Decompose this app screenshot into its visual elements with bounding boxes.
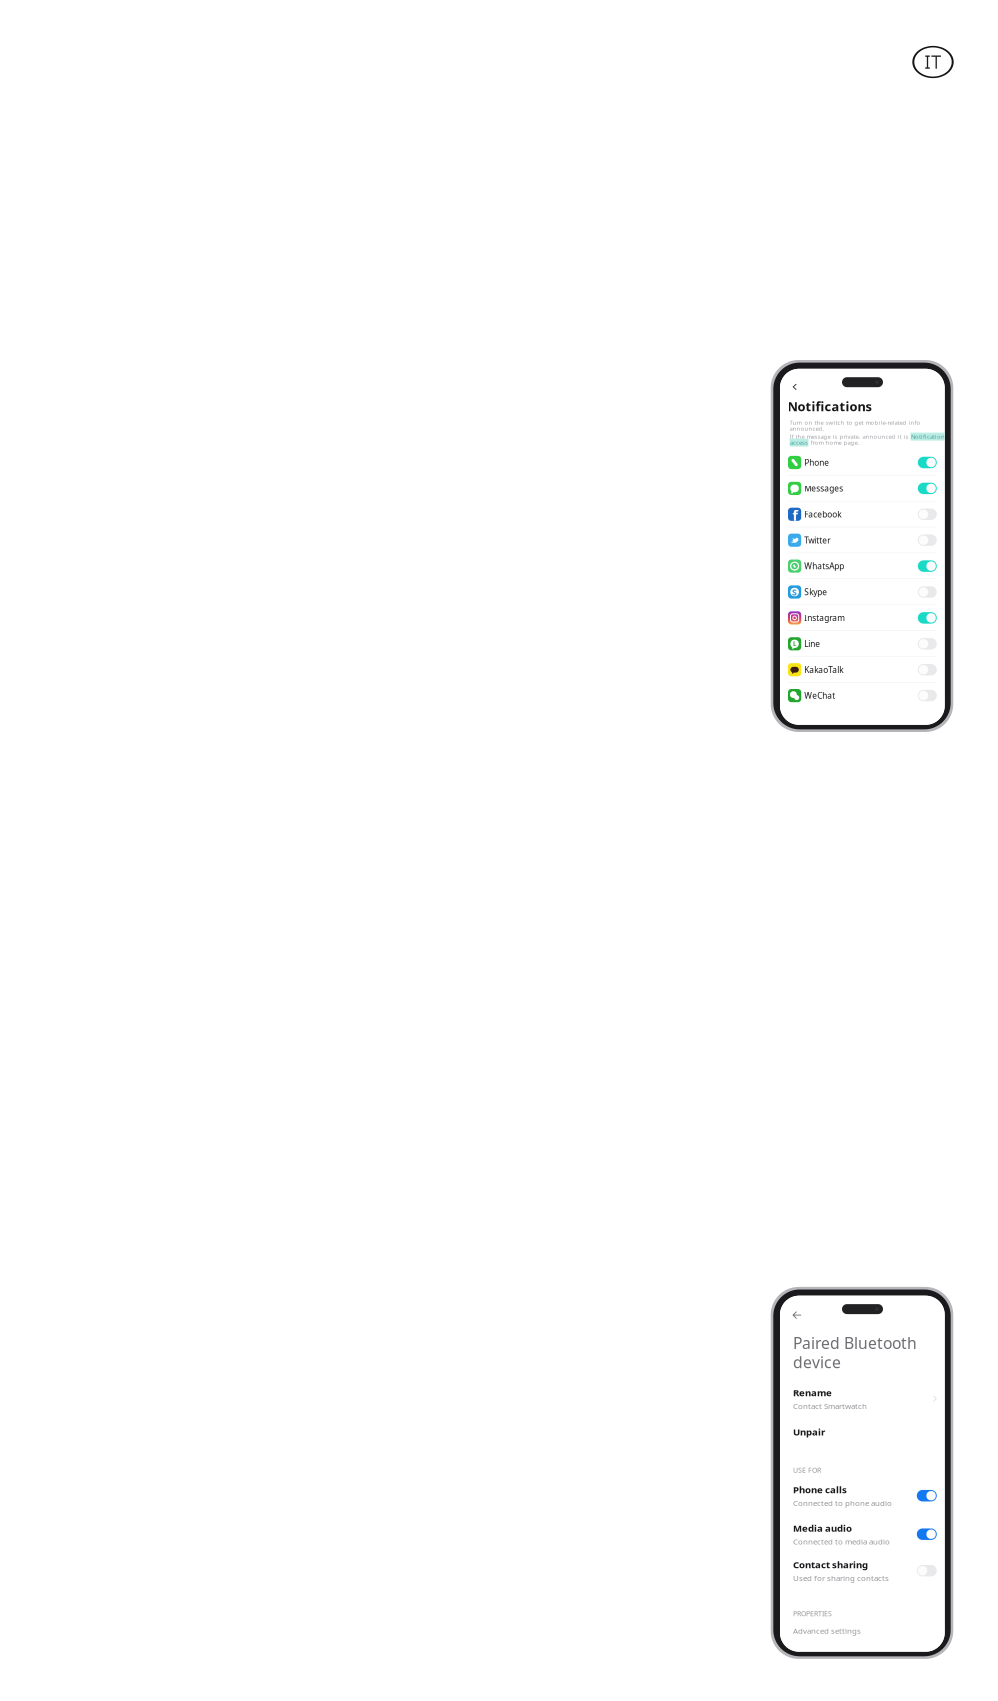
staticText: device	[793, 1351, 841, 1373]
staticText: Advanced settings	[793, 1625, 861, 1636]
staticText: access	[790, 439, 808, 447]
button[interactable]: Twitter	[788, 527, 937, 553]
staticText: Connected to media audio	[793, 1536, 890, 1547]
button[interactable]: Back	[789, 381, 801, 393]
button[interactable]: L	[788, 631, 937, 657]
button[interactable]: Contact sharing	[793, 1561, 937, 1580]
staticText: WeChat	[804, 690, 835, 701]
staticText: f	[792, 506, 797, 525]
staticText: Paired Bluetooth	[793, 1332, 917, 1354]
staticText: Connected to phone audio	[793, 1498, 892, 1508]
staticText: USE FOR	[793, 1465, 821, 1475]
staticText: If the message is private, announced it …	[790, 433, 911, 441]
button[interactable]: Unpair	[793, 1425, 937, 1438]
staticText: Skype	[804, 586, 827, 598]
staticText: WhatsApp	[804, 560, 844, 572]
staticText: Contact Smartwatch	[793, 1401, 867, 1411]
staticText: Contact sharing	[793, 1558, 868, 1571]
staticText: Phone calls	[793, 1483, 847, 1496]
button[interactable]: Language: Italian	[912, 46, 953, 78]
staticText: Notification	[911, 433, 945, 441]
staticText: Turn on the switch to get mobile-related…	[790, 419, 921, 427]
button[interactable]: WhatsApp	[788, 553, 937, 579]
button[interactable]: KakaoTalk	[788, 657, 937, 683]
staticText: Notifications	[788, 398, 872, 415]
staticText: Instagram	[804, 612, 845, 624]
staticText: KakaoTalk	[804, 664, 843, 675]
staticText: Messages	[804, 483, 843, 494]
staticText: Used for sharing contacts	[793, 1573, 889, 1583]
staticText: Facebook	[804, 509, 841, 520]
staticText: Twitter	[804, 535, 830, 546]
staticText: Phone	[804, 457, 829, 468]
button[interactable]: WeChat	[788, 683, 937, 709]
staticText: from home page.	[808, 439, 859, 447]
button[interactable]: Phone	[788, 450, 937, 475]
button[interactable]: access	[790, 439, 808, 447]
staticText: S	[792, 586, 797, 598]
staticText: announced.	[790, 425, 825, 433]
staticText: Line	[804, 638, 820, 649]
staticText: Unpair	[793, 1425, 825, 1438]
button[interactable]: S	[788, 579, 937, 605]
button[interactable]: Media audio	[793, 1525, 937, 1544]
staticText: L	[793, 640, 796, 648]
button[interactable]: Notification	[911, 433, 945, 441]
button[interactable]: Phone calls	[793, 1486, 937, 1505]
button[interactable]: Back	[790, 1308, 804, 1322]
staticText: Media audio	[793, 1521, 852, 1535]
button[interactable]: Messages	[788, 475, 937, 501]
button[interactable]: Instagram	[788, 605, 937, 631]
button[interactable]: Rename	[793, 1389, 937, 1408]
button[interactable]: f	[788, 501, 937, 527]
staticText: Rename	[793, 1386, 832, 1399]
staticText: PROPERTIES	[793, 1609, 832, 1618]
